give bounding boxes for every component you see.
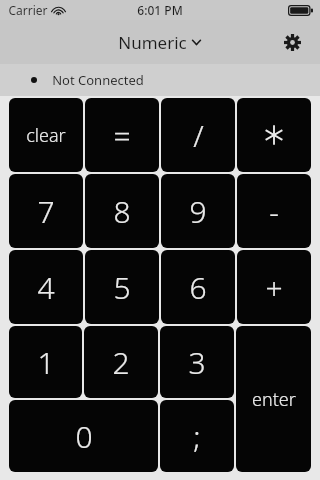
button[interactable]: /	[161, 98, 235, 172]
button[interactable]: 2	[84, 326, 158, 398]
button[interactable]: 7	[9, 174, 83, 248]
button[interactable]: -	[237, 174, 311, 248]
staticText: 7	[37, 191, 55, 232]
staticText: 1	[37, 342, 55, 383]
staticText: 2	[112, 342, 130, 383]
staticText: 3	[188, 342, 206, 383]
button[interactable]: 8	[85, 174, 159, 248]
button[interactable]: 9	[161, 174, 235, 248]
staticText: enter	[252, 387, 296, 412]
staticText: Not Connected	[52, 71, 144, 89]
staticText: Numeric	[118, 31, 187, 54]
staticText: /	[193, 115, 204, 156]
staticText: 0	[75, 416, 93, 457]
staticText: 9	[189, 191, 207, 232]
button[interactable]: Numeric	[118, 31, 202, 54]
button[interactable]: ;	[160, 400, 234, 472]
staticText: -	[269, 191, 279, 232]
button[interactable]: +	[237, 250, 311, 324]
staticText: ;	[193, 416, 201, 457]
staticText: 5	[113, 267, 131, 308]
button[interactable]: 4	[9, 250, 83, 324]
staticText: 4	[37, 267, 55, 308]
button[interactable]: enter	[236, 326, 311, 472]
button[interactable]: 6	[161, 250, 235, 324]
button[interactable]	[237, 98, 311, 172]
button[interactable]: Settings	[274, 24, 310, 60]
staticText: clear	[26, 123, 66, 148]
staticText: Carrier	[8, 2, 48, 18]
staticText: =	[113, 115, 131, 156]
staticText: 6	[189, 267, 207, 308]
button[interactable]: clear	[9, 98, 83, 172]
staticText: 8	[113, 191, 131, 232]
button[interactable]: 1	[9, 326, 82, 398]
button[interactable]: 3	[160, 326, 234, 398]
staticText: 6:01 PM	[137, 2, 183, 18]
button[interactable]: 5	[85, 250, 159, 324]
button[interactable]: 0	[9, 400, 158, 472]
button[interactable]: =	[85, 98, 159, 172]
staticText: +	[265, 267, 283, 308]
